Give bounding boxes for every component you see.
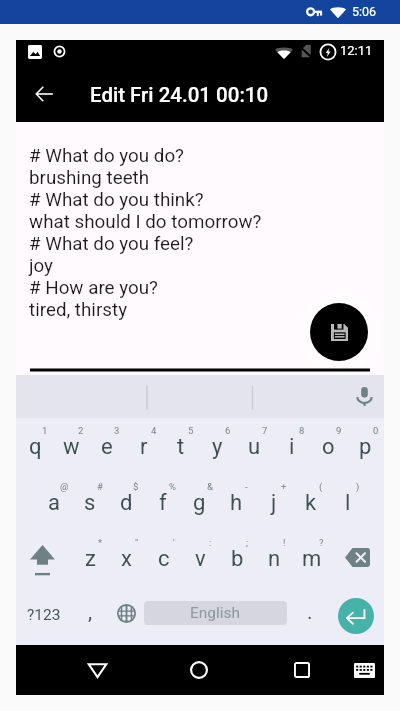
staticText: q [29,434,42,460]
staticText: " [135,537,139,548]
staticText: b [231,546,244,572]
staticText: k [305,490,317,516]
staticText: ' [173,537,175,548]
staticText: 5 [188,425,194,436]
button[interactable]: Change keyboard language [108,586,144,644]
staticText: t [177,434,185,460]
staticText: ? [319,537,324,548]
staticText: l [345,490,351,516]
button[interactable]: u [236,418,273,474]
staticText: m [302,546,322,572]
button[interactable]: Enter [329,587,383,645]
staticText: d [120,490,133,516]
staticText: x [121,546,132,572]
staticText: ) [356,481,360,492]
button[interactable]: . [292,586,328,644]
staticText: * [98,537,103,548]
button[interactable]: c [145,530,182,586]
staticText: j [271,490,277,516]
staticText: - [245,481,248,492]
button[interactable]: f [144,474,181,530]
staticText: f [159,490,167,516]
button[interactable]: Back [81,652,113,688]
staticText: i [289,434,295,460]
staticText: u [248,434,261,460]
button[interactable]: ?123 [20,586,68,644]
staticText: ! [283,537,286,548]
button[interactable]: v [182,530,219,586]
button[interactable]: w [53,418,89,474]
button[interactable]: m [293,530,330,586]
staticText: % [169,481,176,492]
button[interactable]: Switch keyboard [348,652,380,688]
staticText: e [101,434,113,460]
staticText: + [281,481,287,492]
button[interactable]: Backspace [330,530,384,586]
staticText: z [85,546,96,572]
button[interactable]: y [199,418,236,474]
staticText: Edit Fri 24.01 00:10 [90,83,269,107]
staticText: 7 [262,425,268,436]
staticText: & [207,481,213,492]
button[interactable]: j [255,474,292,530]
button[interactable]: Shift [16,530,72,586]
staticText: y [212,434,223,460]
button[interactable]: a [36,474,72,530]
staticText: ( [319,481,323,492]
staticText: @ [60,481,69,492]
staticText: # What do you do? brushing teeth # What … [29,145,262,321]
button[interactable]: d [108,474,144,530]
button[interactable]: Voice input [348,380,381,413]
button[interactable]: s [72,474,108,530]
staticText: r [140,434,148,460]
staticText: 6 [225,425,231,436]
button[interactable]: i [273,418,310,474]
button[interactable]: h [218,474,255,530]
staticText: 2 [78,425,84,436]
staticText: $ [133,481,139,492]
staticText: o [322,434,335,460]
staticText: : [209,537,212,548]
staticText: ?123 [27,606,61,624]
button[interactable]: g [181,474,218,530]
button[interactable]: Recents [286,652,318,688]
button[interactable]: Back [20,70,68,118]
button[interactable]: b [219,530,256,586]
button[interactable]: e [89,418,125,474]
staticText: p [359,434,372,460]
button[interactable]: l [329,474,366,530]
staticText: s [84,490,96,516]
staticText: 4 [151,425,157,436]
staticText: 0 [373,425,379,436]
staticText: 3 [114,425,120,436]
staticText: n [268,546,281,572]
button[interactable]: , [72,586,108,644]
staticText: 12:11 [340,43,373,58]
staticText: a [48,490,60,516]
button[interactable]: r [125,418,162,474]
button[interactable]: n [256,530,293,586]
staticText: # [97,481,103,492]
button[interactable]: k [292,474,329,530]
button[interactable]: p [347,418,384,474]
staticText: c [158,546,170,572]
staticText: , [88,600,93,625]
staticText: . [307,600,313,625]
button[interactable]: Save [310,303,368,361]
staticText: v [195,546,206,572]
staticText: 1 [42,425,48,436]
staticText: English [190,604,241,622]
button[interactable]: z [72,530,108,586]
button[interactable]: t [162,418,199,474]
button[interactable]: English [144,601,287,625]
staticText: 8 [299,425,305,436]
staticText: ; [246,537,249,548]
staticText: g [193,490,206,516]
staticText: w [63,434,80,460]
staticText: 9 [336,425,342,436]
button[interactable]: o [310,418,347,474]
button[interactable]: x [108,530,145,586]
button[interactable]: Home [183,652,215,688]
button[interactable]: q [17,418,53,474]
staticText: 5:06 [352,4,377,19]
